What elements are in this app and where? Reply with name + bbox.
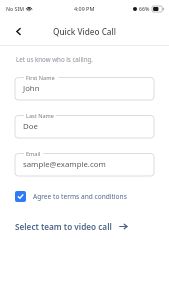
staticText: John (23, 83, 40, 94)
staticText: Let us know who is calling. (16, 55, 93, 63)
staticText: 66% (139, 5, 150, 12)
staticText: Quick Video Call (53, 26, 116, 37)
button[interactable]: Agree to terms and conditions (15, 188, 154, 204)
staticText: No SIM (6, 5, 24, 12)
button[interactable]: Select team to video call (15, 217, 154, 235)
button[interactable]: Back (8, 21, 28, 41)
button[interactable]: Email (15, 149, 154, 176)
staticText: sample@example.com (23, 159, 106, 170)
staticText: First Name (26, 74, 55, 82)
staticText: Select team to video call (15, 221, 112, 232)
staticText: Agree to terms and conditions (33, 192, 127, 201)
staticText: 4:09 PM (74, 5, 95, 12)
button[interactable]: Last Name (15, 111, 154, 138)
staticText: Last Name (26, 112, 54, 120)
staticText: Doe (23, 121, 38, 132)
staticText: Email (26, 150, 41, 158)
button[interactable]: First Name (15, 73, 154, 100)
